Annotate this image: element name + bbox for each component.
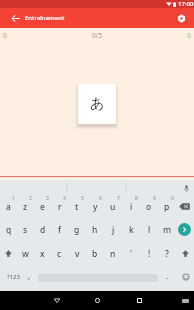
button[interactable]: Settings xyxy=(172,8,191,28)
staticText: 1 xyxy=(12,195,15,202)
staticText: j xyxy=(112,224,115,236)
button[interactable]: Voice input xyxy=(181,183,191,193)
button[interactable]: Back xyxy=(6,8,25,28)
staticText: v xyxy=(75,248,80,260)
button[interactable]: d xyxy=(34,218,51,241)
staticText: z xyxy=(23,201,28,213)
staticText: ! xyxy=(148,248,151,260)
button[interactable]: 3 xyxy=(34,193,51,216)
button[interactable]: Recents xyxy=(130,291,149,310)
button[interactable]: l xyxy=(140,218,158,241)
button[interactable]: あ xyxy=(78,84,116,124)
staticText: ? xyxy=(165,248,169,260)
staticText: 9 xyxy=(153,195,156,202)
button[interactable]: g xyxy=(68,218,86,241)
staticText: Entraînement xyxy=(25,14,65,22)
staticText: a xyxy=(6,201,11,213)
staticText: p xyxy=(164,201,170,213)
staticText: 0/5 xyxy=(92,31,102,40)
button[interactable]: j xyxy=(104,218,122,241)
staticText: 17:00 xyxy=(178,0,194,8)
staticText: o xyxy=(146,201,152,213)
button[interactable]: ! xyxy=(140,242,158,265)
staticText: i xyxy=(130,201,133,213)
button[interactable]: 5 xyxy=(68,193,86,216)
staticText: t xyxy=(75,201,79,213)
staticText: 0 xyxy=(171,195,174,202)
button[interactable]: n xyxy=(104,242,122,265)
button[interactable]: Send xyxy=(176,218,194,241)
staticText: c xyxy=(57,248,62,260)
button[interactable]: b xyxy=(86,242,104,265)
button[interactable]: q xyxy=(0,218,17,241)
button[interactable]: m xyxy=(158,218,176,241)
button[interactable]: Back xyxy=(47,291,66,310)
button[interactable]: Backspace xyxy=(176,195,194,218)
staticText: g xyxy=(74,224,80,236)
button[interactable]: Hide keyboard xyxy=(179,295,191,307)
button[interactable]: 1 xyxy=(0,193,17,216)
staticText: e xyxy=(40,201,45,213)
staticText: 8 xyxy=(135,195,138,202)
staticText: 0 xyxy=(187,31,191,40)
staticText: 0 xyxy=(3,31,7,40)
button[interactable]: v xyxy=(68,242,86,265)
staticText: 5 xyxy=(81,195,84,202)
button[interactable]: 7 xyxy=(104,193,122,216)
staticText: q xyxy=(6,224,12,236)
button[interactable]: c xyxy=(51,242,68,265)
button[interactable]: ' xyxy=(122,242,140,265)
button[interactable]: x xyxy=(34,242,51,265)
button[interactable]: ? xyxy=(158,242,176,265)
staticText: 4 xyxy=(63,195,66,202)
staticText: . xyxy=(166,270,169,281)
button[interactable]: w xyxy=(17,242,34,265)
button[interactable]: Emoji xyxy=(177,265,194,288)
staticText: f xyxy=(58,224,62,236)
staticText: s xyxy=(23,224,28,236)
button[interactable]: 9 xyxy=(140,193,158,216)
staticText: r xyxy=(58,201,62,213)
staticText: 7 xyxy=(117,195,120,202)
staticText: d xyxy=(40,224,46,236)
button[interactable]: . xyxy=(159,265,175,288)
button[interactable]: k xyxy=(122,218,140,241)
staticText: h xyxy=(92,224,98,236)
staticText: u xyxy=(110,201,116,213)
staticText: x xyxy=(40,248,45,260)
staticText: ' xyxy=(130,248,133,260)
staticText: k xyxy=(129,224,134,236)
button[interactable]: 4 xyxy=(51,193,68,216)
staticText: w xyxy=(22,248,29,260)
button[interactable]: Home xyxy=(88,291,107,310)
staticText: 3 xyxy=(46,195,49,202)
staticText: ?123 xyxy=(7,273,20,281)
staticText: n xyxy=(110,248,116,260)
button[interactable]: 0 xyxy=(158,193,176,216)
button[interactable]: h xyxy=(86,218,104,241)
staticText: あ xyxy=(90,95,105,113)
staticText: l xyxy=(148,224,151,236)
staticText: , xyxy=(28,270,31,281)
staticText: 6 xyxy=(99,195,102,202)
button[interactable]: , xyxy=(21,265,37,288)
button[interactable]: Shift xyxy=(0,242,17,265)
button[interactable]: s xyxy=(17,218,34,241)
button[interactable]: Shift xyxy=(176,242,194,265)
staticText: m xyxy=(163,224,172,236)
staticText: 2 xyxy=(29,195,32,202)
staticText: y xyxy=(93,201,98,213)
button[interactable]: ?123 xyxy=(0,265,26,288)
button[interactable]: 2 xyxy=(17,193,34,216)
button[interactable]: 8 xyxy=(122,193,140,216)
button[interactable]: f xyxy=(51,218,68,241)
staticText: b xyxy=(92,248,98,260)
button[interactable]: 6 xyxy=(86,193,104,216)
